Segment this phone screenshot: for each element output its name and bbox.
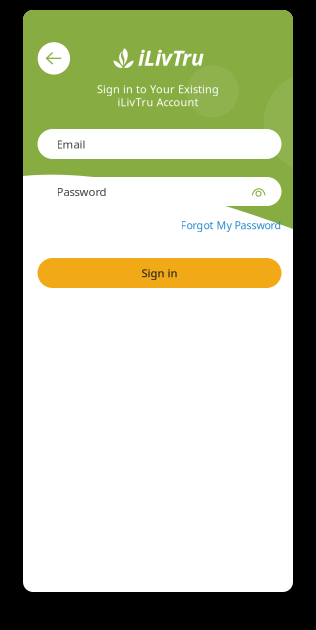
button[interactable]: Password xyxy=(37,177,281,206)
staticText: Sign in xyxy=(141,265,177,281)
staticText: iLivTru Account xyxy=(117,95,198,109)
button[interactable]: Back xyxy=(33,37,75,79)
staticText: Password xyxy=(56,184,106,199)
staticText: Forgot My Password xyxy=(180,218,281,232)
button[interactable]: Email xyxy=(37,129,281,159)
staticText: Sign in to Your Existing xyxy=(97,82,219,96)
button[interactable]: Forgot My Password xyxy=(180,218,281,232)
staticText: iLivTru xyxy=(138,43,204,72)
staticText: Email xyxy=(56,136,85,152)
button[interactable]: Sign in xyxy=(37,258,281,288)
